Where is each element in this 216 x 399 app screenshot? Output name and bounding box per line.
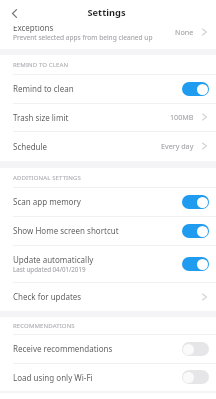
button[interactable]: Check for updates bbox=[0, 282, 216, 311]
button[interactable]: Off bbox=[182, 370, 209, 384]
staticText: Settings bbox=[87, 6, 126, 19]
staticText: Check for updates bbox=[13, 291, 82, 302]
staticText: None bbox=[175, 27, 194, 37]
staticText: Schedule bbox=[13, 141, 48, 152]
staticText: Receive recommendations bbox=[13, 343, 113, 354]
button[interactable]: On bbox=[182, 82, 209, 96]
button[interactable]: Update automatically bbox=[0, 245, 216, 282]
staticText: Trash size limit bbox=[13, 112, 69, 123]
button[interactable]: Schedule bbox=[0, 131, 216, 161]
staticText: Update automatically bbox=[13, 254, 94, 265]
staticText: Show Home screen shortcut bbox=[13, 225, 119, 236]
button[interactable]: On bbox=[182, 257, 209, 271]
button[interactable]: On bbox=[182, 195, 209, 209]
staticText: Scan app memory bbox=[13, 196, 81, 207]
button[interactable]: On bbox=[182, 224, 209, 238]
staticText: 100MB bbox=[170, 112, 194, 122]
staticText: Exceptions bbox=[13, 22, 54, 33]
button[interactable]: Load using only Wi-Fi bbox=[0, 363, 216, 391]
button[interactable]: Exceptions bbox=[0, 13, 216, 50]
button[interactable]: Back bbox=[4, 3, 24, 23]
button[interactable]: Off bbox=[182, 342, 209, 356]
staticText: Last updated 04/01/2019 bbox=[13, 265, 86, 273]
staticText: REMIND TO CLEAN bbox=[13, 61, 69, 69]
button[interactable]: Scan app memory bbox=[0, 187, 216, 216]
button[interactable]: Remind to clean bbox=[0, 74, 216, 103]
staticText: ADDITIONAL SETTINGS bbox=[13, 174, 81, 182]
staticText: Every day bbox=[161, 141, 194, 151]
staticText: Remind to clean bbox=[13, 83, 74, 94]
staticText: Prevent selected apps from being cleaned… bbox=[13, 33, 153, 42]
staticText: RECOMMENDATIONS bbox=[13, 322, 75, 330]
button[interactable]: Receive recommendations bbox=[0, 334, 216, 363]
staticText: Load using only Wi-Fi bbox=[13, 372, 93, 383]
button[interactable]: Show Home screen shortcut bbox=[0, 216, 216, 245]
button[interactable]: Trash size limit bbox=[0, 103, 216, 131]
